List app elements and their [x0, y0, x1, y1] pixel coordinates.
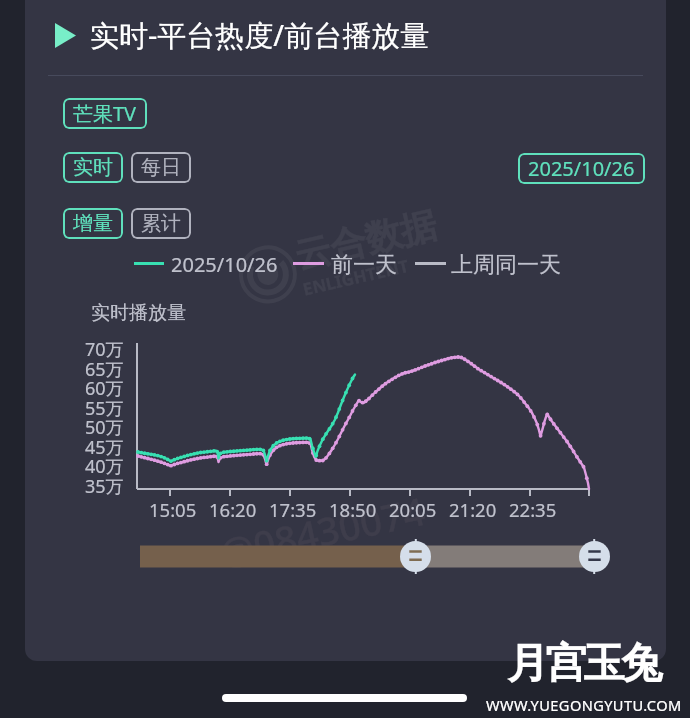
button[interactable]: Adjust time range: [579, 541, 610, 572]
button[interactable]: 上周同一天: [415, 251, 561, 275]
staticText: 35万: [85, 474, 124, 499]
staticText: 每日: [141, 155, 181, 180]
staticText: 芒果TV: [73, 100, 137, 127]
staticText: 18:50: [329, 497, 377, 522]
staticText: 40万: [85, 454, 124, 479]
button[interactable]: 2025/10/26: [134, 251, 278, 275]
button[interactable]: 增量: [63, 208, 123, 239]
staticText: 2025/10/26: [528, 155, 635, 182]
staticText: 65万: [85, 357, 124, 382]
staticText: 云合数据: [290, 202, 441, 278]
staticText: WWW.YUEGONGYUTU.COM: [486, 695, 682, 715]
staticText: 累计: [141, 211, 181, 236]
staticText: 50万: [85, 415, 124, 440]
staticText: 前一天: [331, 251, 397, 275]
staticText: @08430074: [215, 484, 430, 578]
staticText: 60万: [85, 376, 124, 401]
staticText: 22:35: [509, 497, 557, 522]
staticText: 21:20: [449, 497, 497, 522]
button[interactable]: 2025/10/26: [518, 153, 645, 184]
staticText: 增量: [73, 211, 113, 236]
staticText: ENLIGHTENT: [301, 254, 411, 301]
staticText: 上周同一天: [451, 251, 561, 275]
staticText: 20:05: [389, 497, 437, 522]
button[interactable]: Adjust time range: [400, 541, 431, 572]
button[interactable]: 实时-平台热度/前台播放量: [55, 14, 430, 56]
staticText: 月宫玉兔: [509, 638, 661, 690]
staticText: 实时-平台热度/前台播放量: [90, 15, 430, 55]
button[interactable]: 累计: [131, 208, 191, 239]
button[interactable]: 实时: [63, 152, 123, 183]
staticText: 70万: [85, 337, 124, 362]
staticText: 45万: [85, 435, 124, 460]
button[interactable]: 前一天: [293, 251, 397, 275]
button[interactable]: 每日: [131, 152, 191, 183]
staticText: 55万: [85, 396, 124, 421]
staticText: 17:35: [269, 497, 317, 522]
staticText: 15:05: [149, 497, 197, 522]
staticText: 2025/10/26: [171, 251, 278, 275]
staticText: 实时: [73, 155, 113, 180]
staticText: 16:20: [209, 497, 257, 522]
button[interactable]: 芒果TV: [63, 98, 147, 129]
staticText: 实时播放量: [91, 301, 186, 325]
